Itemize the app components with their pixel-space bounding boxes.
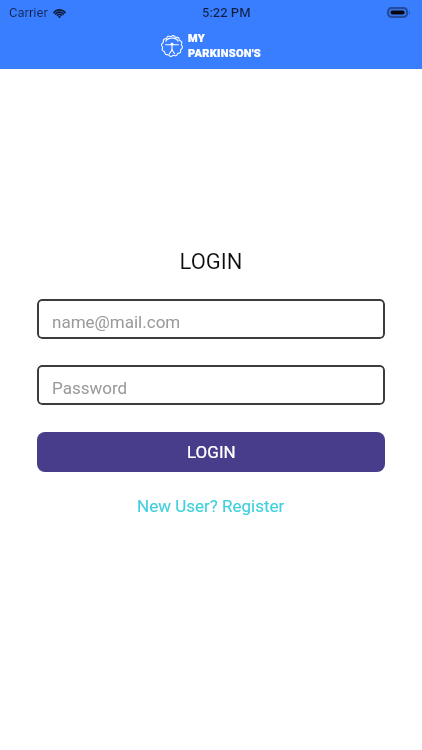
staticText: PARKINSON'S [188,47,262,60]
button[interactable]: Password [37,365,385,405]
staticText: 5:22 PM [202,5,251,20]
button[interactable]: LOGIN [37,432,385,472]
staticText: LOGIN [187,442,236,462]
other: Wifi signal [52,7,67,18]
staticText: Password [52,378,128,398]
other: Battery full [387,7,411,18]
staticText: MY [188,32,205,45]
button[interactable]: name@mail.com [37,299,385,339]
staticText: Carrier [9,5,48,20]
staticText: name@mail.com [52,312,181,332]
button[interactable]: New User? Register [127,491,295,521]
other: My Parkinson's logo [161,35,183,57]
staticText: LOGIN [0,249,422,275]
